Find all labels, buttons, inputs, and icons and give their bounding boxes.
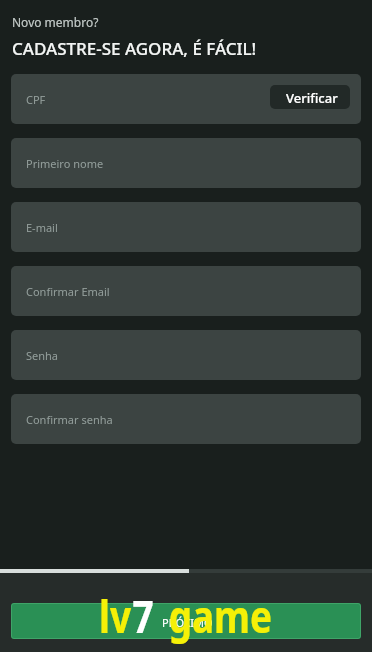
- staticText: Confirmar Email: [26, 284, 110, 299]
- button[interactable]: Confirmar senha: [11, 394, 361, 444]
- staticText: Primeiro nome: [26, 156, 104, 171]
- button[interactable]: E-mail: [11, 202, 361, 252]
- button[interactable]: Primeiro nome: [11, 138, 361, 188]
- staticText: PRÓXIMO: [162, 615, 213, 630]
- staticText: Verificar: [286, 89, 338, 107]
- staticText: game: [169, 585, 273, 646]
- button[interactable]: Confirmar Email: [11, 266, 361, 316]
- staticText: CPF: [26, 92, 46, 107]
- staticText: 7: [133, 585, 154, 646]
- staticText: Confirmar senha: [26, 412, 113, 427]
- staticText: Senha: [26, 348, 59, 363]
- staticText: Novo membro?: [12, 14, 99, 30]
- button[interactable]: Verificar: [270, 85, 350, 109]
- staticText: CADASTRE-SE AGORA, É FÁCIL!: [12, 37, 257, 60]
- button[interactable]: Senha: [11, 330, 361, 380]
- other: Progresso do cadastro: [0, 569, 372, 573]
- staticText: E-mail: [26, 220, 58, 235]
- staticText: lv: [99, 585, 132, 646]
- button[interactable]: CPF: [11, 74, 361, 124]
- button[interactable]: PRÓXIMO: [11, 603, 361, 639]
